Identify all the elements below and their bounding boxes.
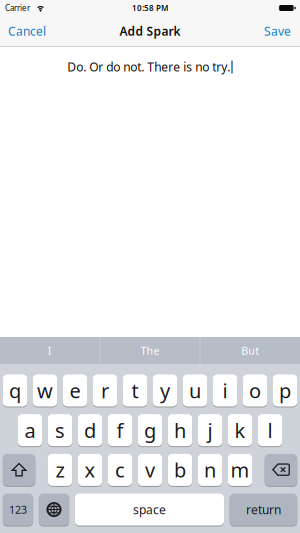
button[interactable]: k — [228, 414, 252, 446]
staticText: s — [55, 417, 65, 443]
staticText: e — [69, 377, 80, 404]
staticText: t — [131, 377, 138, 404]
button[interactable]: Cancel — [0, 23, 46, 39]
button[interactable]: m — [228, 454, 252, 486]
staticText: i — [222, 377, 227, 404]
staticText: Carrier — [5, 3, 30, 13]
staticText: h — [174, 417, 186, 443]
button[interactable]: r — [93, 374, 117, 406]
staticText: return — [246, 502, 281, 517]
staticText: The — [140, 343, 159, 358]
button[interactable]: e — [63, 374, 87, 406]
button[interactable]: q — [3, 374, 27, 406]
button[interactable]: v — [138, 454, 162, 486]
button[interactable]: s — [48, 414, 72, 446]
button[interactable]: return — [230, 494, 297, 526]
staticText: m — [230, 457, 249, 483]
staticText: p — [279, 377, 291, 404]
button[interactable]: y — [153, 374, 177, 406]
button[interactable]: Shift — [3, 454, 35, 486]
staticText: a — [24, 417, 35, 443]
staticText: Cancel — [8, 23, 46, 39]
staticText: b — [174, 457, 186, 483]
staticText: But — [241, 343, 259, 358]
staticText: y — [160, 377, 170, 404]
staticText: d — [84, 417, 96, 443]
button[interactable]: z — [48, 454, 72, 486]
button[interactable]: I — [0, 337, 99, 364]
staticText: 123 — [9, 502, 27, 517]
staticText: q — [9, 377, 21, 404]
staticText: n — [204, 457, 216, 483]
button[interactable]: d — [78, 414, 102, 446]
button[interactable]: h — [168, 414, 192, 446]
button[interactable]: But — [200, 337, 300, 364]
button[interactable]: Delete — [265, 454, 297, 486]
staticText: Do. Or do not. There is no try. — [67, 59, 230, 75]
button[interactable]: 123 — [3, 494, 33, 526]
staticText: space — [133, 502, 166, 517]
staticText: o — [249, 377, 261, 404]
staticText: l — [267, 417, 272, 443]
staticText: 10:58 PM — [132, 3, 168, 13]
staticText: k — [234, 417, 245, 443]
staticText: I — [48, 343, 52, 358]
button[interactable]: f — [108, 414, 132, 446]
button[interactable]: The — [100, 337, 199, 364]
staticText: f — [116, 417, 123, 443]
staticText: Save — [264, 23, 291, 39]
button[interactable]: c — [108, 454, 132, 486]
button[interactable]: u — [183, 374, 207, 406]
button[interactable]: l — [258, 414, 282, 446]
staticText: x — [84, 457, 95, 483]
button[interactable]: o — [243, 374, 267, 406]
button[interactable]: t — [123, 374, 147, 406]
button[interactable]: w — [33, 374, 57, 406]
staticText: c — [115, 457, 125, 483]
button[interactable]: Save — [264, 23, 300, 39]
button[interactable]: space — [75, 494, 224, 526]
staticText: v — [145, 457, 155, 483]
staticText: r — [101, 377, 109, 404]
staticText: Add Spark — [119, 23, 180, 39]
button[interactable]: b — [168, 454, 192, 486]
staticText: g — [144, 417, 156, 443]
staticText: j — [207, 417, 212, 443]
button[interactable]: j — [198, 414, 222, 446]
button[interactable]: g — [138, 414, 162, 446]
button[interactable]: Next keyboard — [39, 494, 69, 526]
button[interactable]: i — [213, 374, 237, 406]
staticText: u — [189, 377, 201, 404]
button[interactable]: n — [198, 454, 222, 486]
staticText: w — [37, 377, 53, 404]
staticText: z — [55, 457, 64, 483]
button[interactable]: p — [273, 374, 297, 406]
button[interactable]: x — [78, 454, 102, 486]
button[interactable]: a — [18, 414, 42, 446]
